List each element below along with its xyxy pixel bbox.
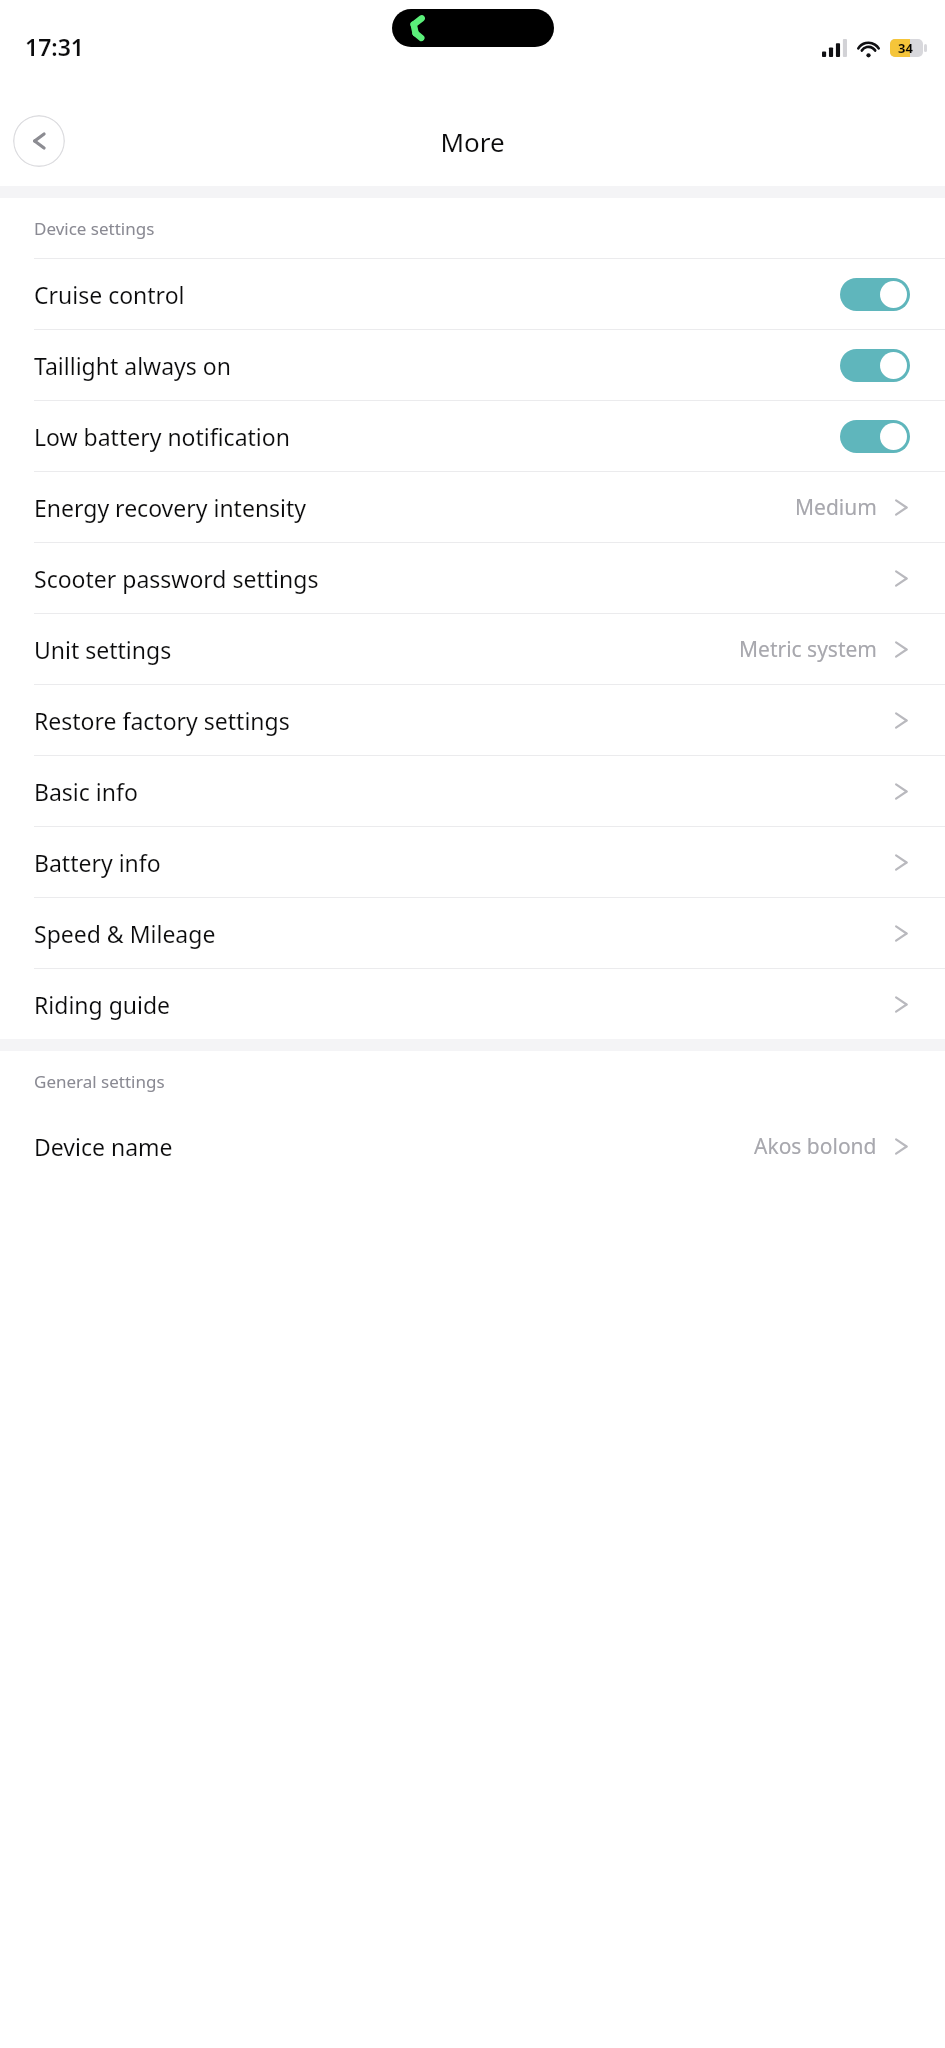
button[interactable]: Speed & Mileage — [0, 898, 945, 968]
button[interactable]: Cruise control — [0, 259, 945, 329]
button[interactable]: Low battery notification — [0, 401, 945, 471]
button[interactable]: Riding guide — [0, 969, 945, 1039]
button[interactable]: Taillight always on — [0, 330, 945, 400]
button[interactable]: Scooter password settings — [0, 543, 945, 613]
staticText: General settings — [34, 1070, 165, 1093]
button[interactable]: Restore factory settings — [0, 685, 945, 755]
staticText: 34 — [898, 39, 913, 57]
staticText: More — [440, 124, 505, 159]
staticText: Battery info — [34, 847, 161, 878]
staticText: Device settings — [34, 217, 155, 240]
staticText: Metric system — [739, 635, 877, 664]
staticText: Akos bolond — [754, 1132, 877, 1161]
button[interactable]: Energy recovery intensity — [0, 472, 945, 542]
button[interactable]: Device name — [0, 1111, 945, 1181]
button[interactable]: Toggle on — [840, 420, 910, 453]
button[interactable]: Toggle on — [840, 349, 910, 382]
button[interactable]: Toggle on — [840, 278, 910, 311]
button[interactable]: Basic info — [0, 756, 945, 826]
staticText: Energy recovery intensity — [34, 492, 307, 523]
staticText: Speed & Mileage — [34, 918, 216, 949]
button[interactable]: Unit settings — [0, 614, 945, 684]
staticText: Riding guide — [34, 989, 171, 1020]
staticText: Unit settings — [34, 634, 172, 665]
staticText: 17:31 — [25, 31, 84, 62]
staticText: Device name — [34, 1131, 173, 1162]
button[interactable]: Back — [13, 115, 65, 167]
staticText: Low battery notification — [34, 421, 290, 452]
staticText: Cruise control — [34, 279, 185, 310]
button[interactable]: Battery info — [0, 827, 945, 897]
staticText: Scooter password settings — [34, 563, 319, 594]
staticText: Medium — [795, 493, 877, 522]
staticText: Restore factory settings — [34, 705, 290, 736]
staticText: Basic info — [34, 776, 138, 807]
staticText: Taillight always on — [34, 350, 231, 381]
